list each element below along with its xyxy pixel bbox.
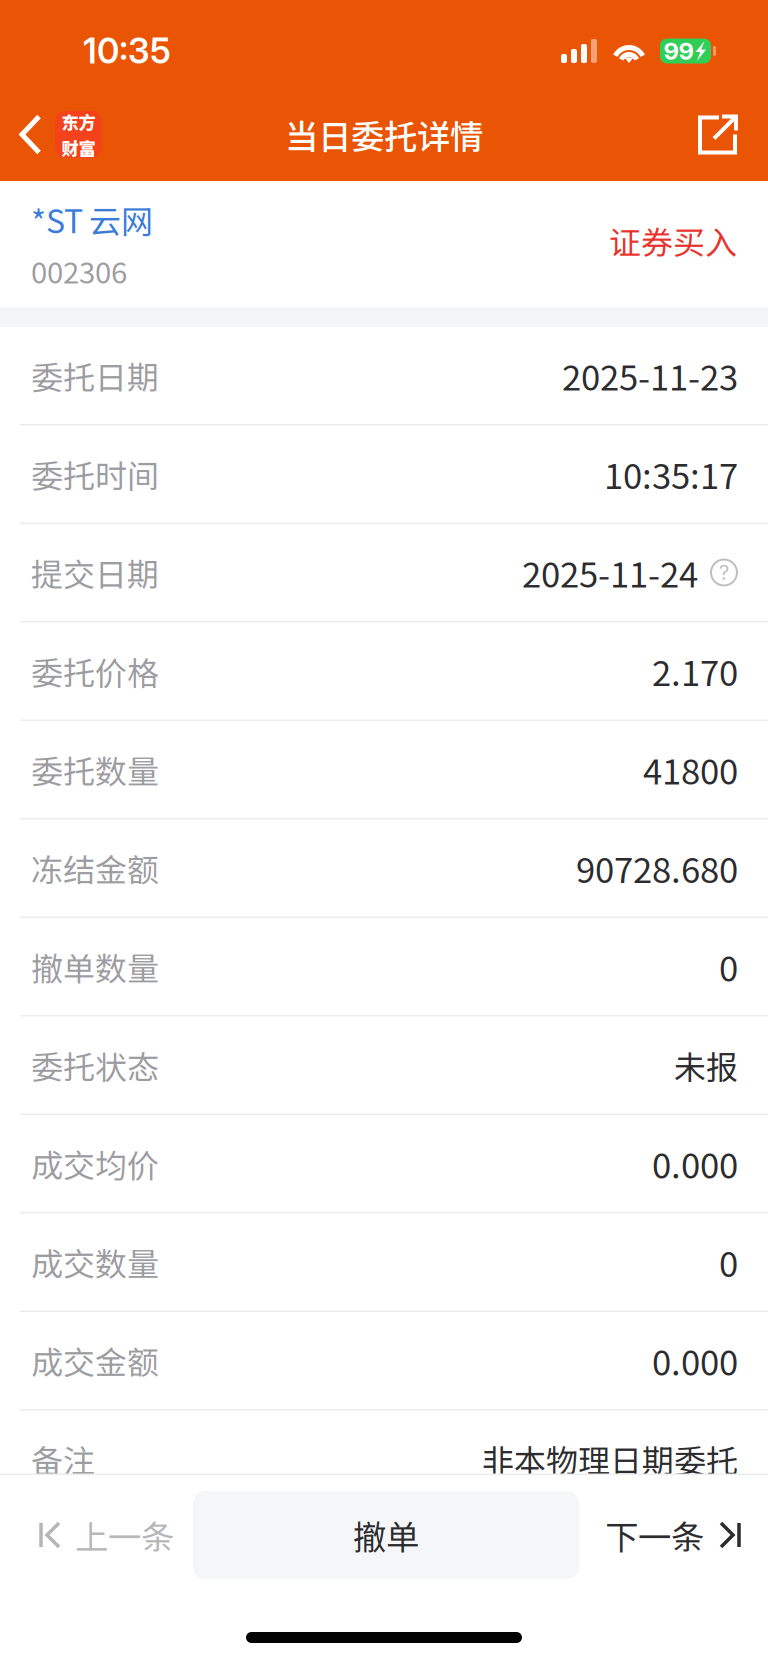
staticText: ? [719,560,729,585]
staticText: 0.000 [652,1138,738,1189]
button[interactable]: 撤单 [193,1475,579,1595]
staticText: 10:35 [83,30,171,72]
staticText: 成交金额 [31,1337,159,1384]
staticText: 002306 [31,249,127,292]
staticText: 成交数量 [31,1239,159,1285]
staticText: 0.000 [652,1335,738,1386]
staticText: 下一条 [605,1511,704,1559]
staticText: 撤单数量 [31,943,159,990]
staticText: 撤单 [353,1511,419,1559]
staticText: 非本物理日期委托 [482,1436,738,1482]
staticText: 90728.680 [576,843,738,893]
staticText: 财富 [61,135,95,160]
staticText: 东方 [61,109,95,134]
staticText: 证券买入 [609,217,737,264]
staticText: 2.170 [652,646,738,696]
staticText: 备注 [31,1436,95,1482]
staticText: 2025-11-23 [562,350,738,401]
staticText: 41800 [643,744,738,795]
staticText: 10:35:17 [604,449,738,499]
staticText: 委托状态 [31,1042,159,1088]
staticText: 成交均价 [31,1140,159,1187]
button[interactable]: Back [0,88,102,181]
staticText: 当日委托详情 [285,110,483,159]
button[interactable]: Share [697,88,768,181]
button[interactable]: 下一条 [579,1475,768,1595]
staticText: *ST 云网 [31,196,153,242]
staticText: 2025-11-24 [522,547,698,598]
staticText: 99 [663,36,693,65]
staticText: 委托价格 [31,648,159,694]
staticText: 提交日期 [31,549,159,596]
staticText: 0 [719,1237,738,1287]
staticText: 冻结金额 [31,845,159,891]
staticText: 委托数量 [31,746,159,793]
staticText: 委托时间 [31,451,159,497]
staticText: 0 [719,941,738,992]
staticText: 未报 [674,1042,738,1088]
staticText: 委托日期 [31,352,159,399]
button[interactable]: 上一条 [0,1475,193,1595]
staticText: 上一条 [75,1511,174,1559]
